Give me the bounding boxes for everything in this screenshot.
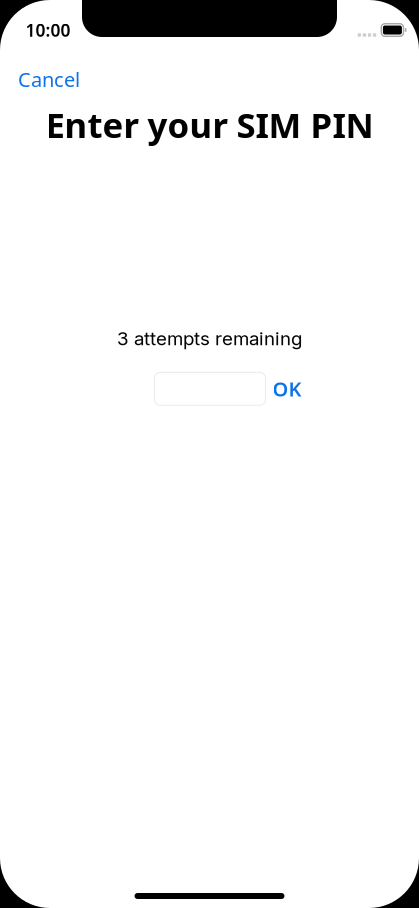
button[interactable]: OK [265, 367, 308, 411]
staticText: OK [272, 376, 301, 402]
staticText: Enter your SIM PIN [45, 101, 373, 147]
button[interactable]: Cancel [0, 56, 92, 103]
staticText: Cancel [18, 66, 80, 93]
staticText: 10:00 [25, 18, 70, 41]
staticText: 3 attempts remaining [117, 327, 302, 350]
button[interactable]: SIM PIN [154, 372, 265, 405]
